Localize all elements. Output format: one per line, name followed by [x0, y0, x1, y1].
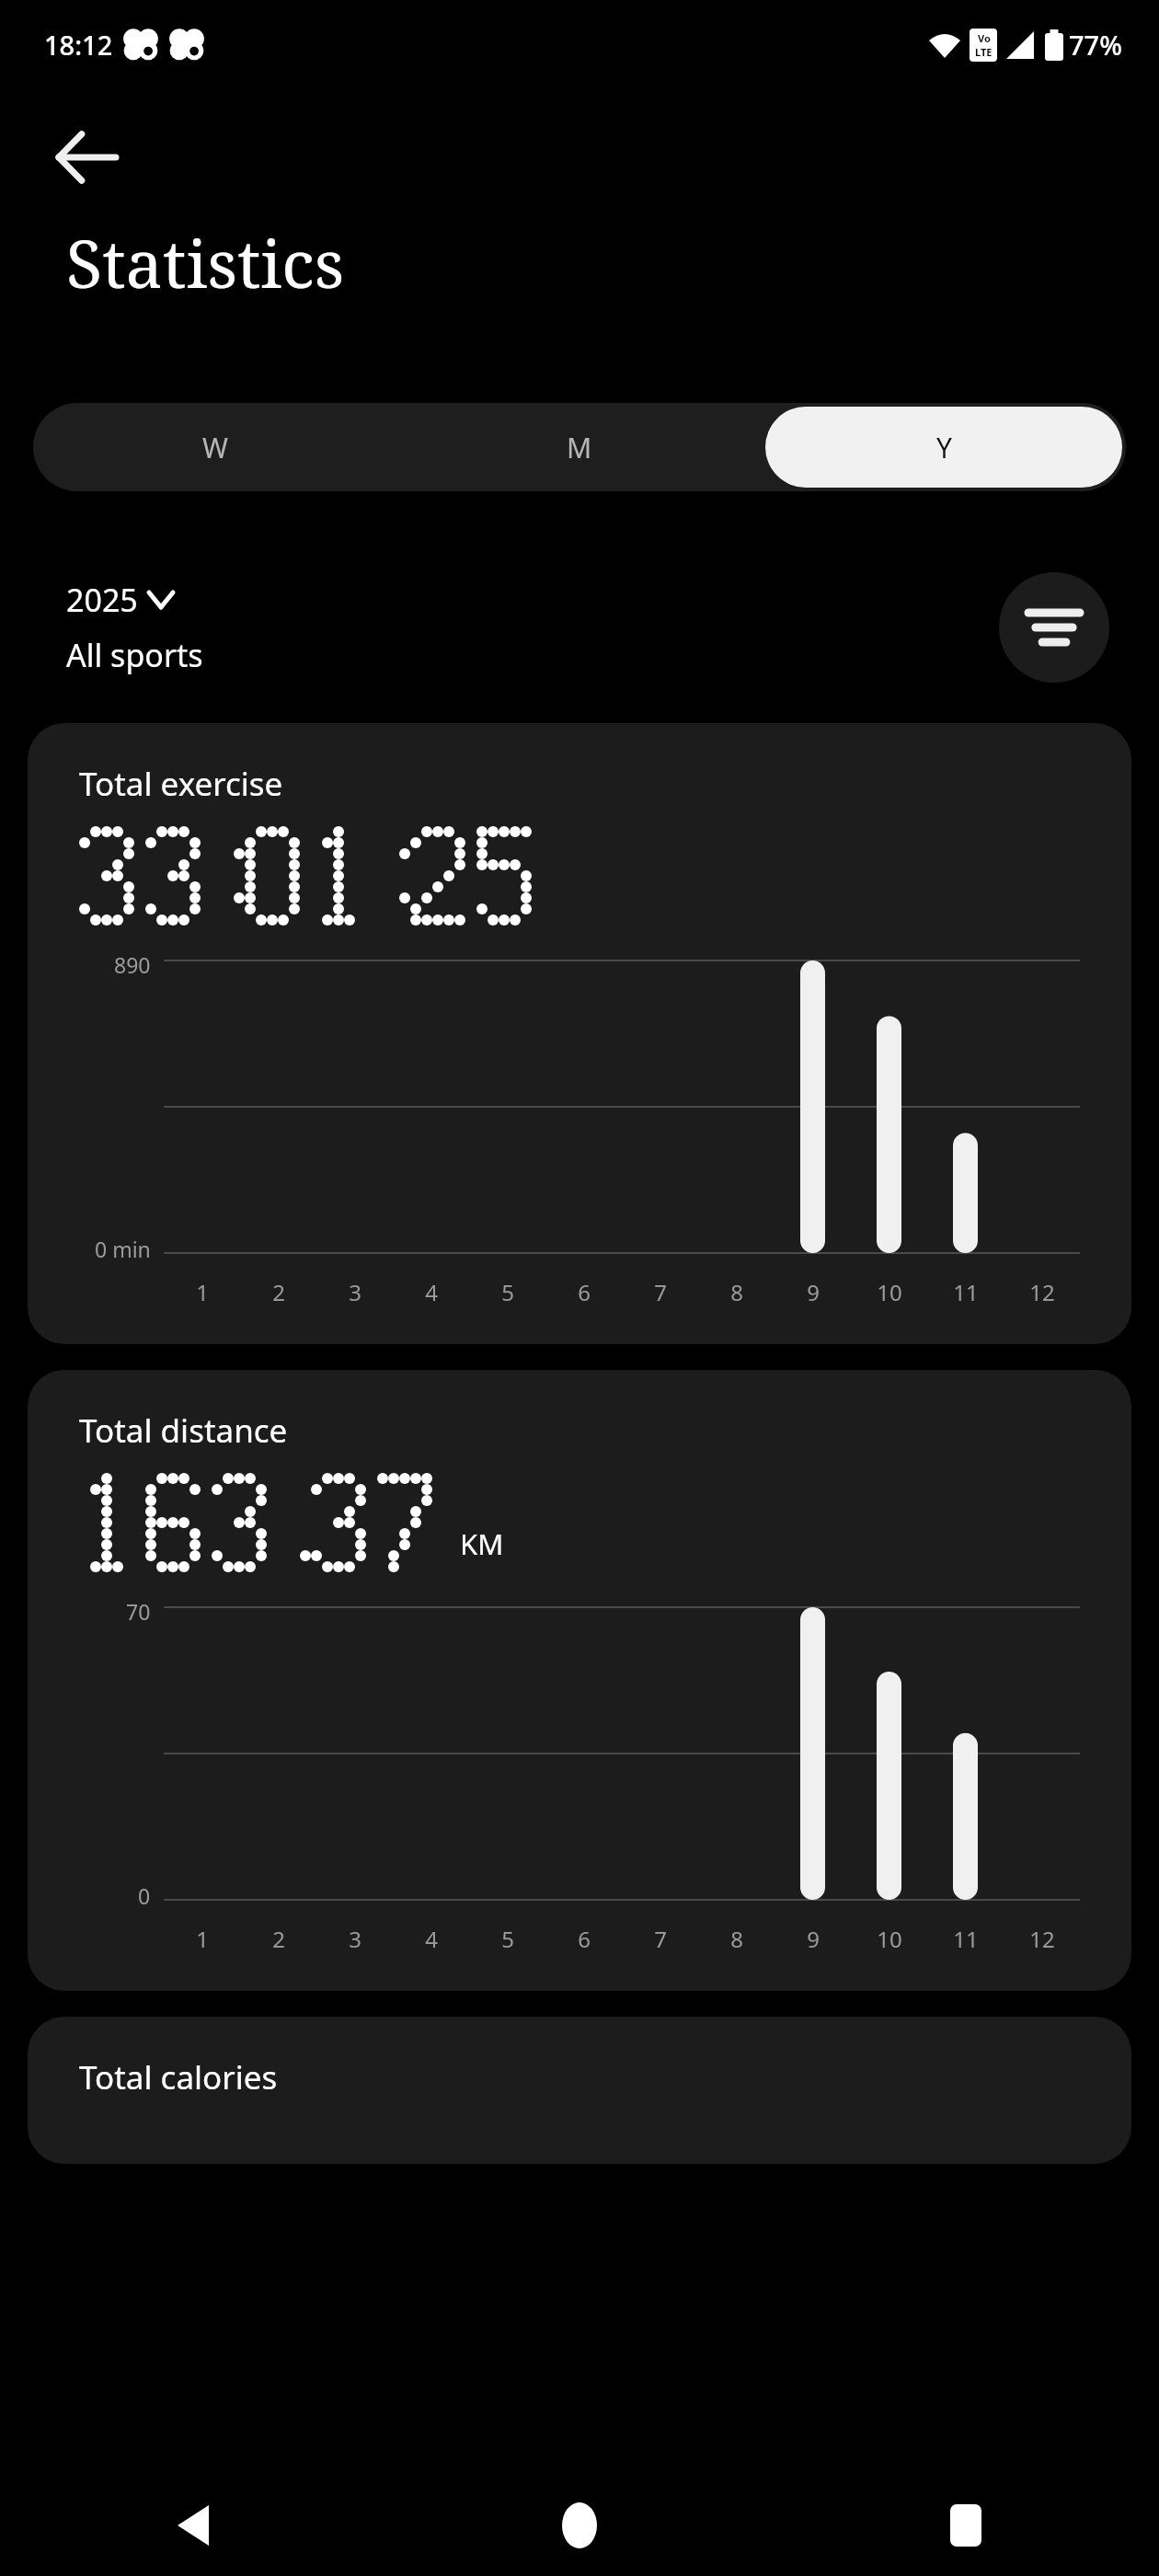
staticText: 7 [654, 1277, 667, 1307]
staticText: 2 [272, 1924, 285, 1954]
button[interactable]: Home [386, 2475, 773, 2576]
staticText: Y [936, 429, 952, 466]
staticText: 5 [501, 1277, 514, 1307]
button[interactable]: Filter [999, 572, 1109, 683]
staticText: Total exercise [79, 762, 283, 806]
button[interactable]: Y [765, 407, 1122, 488]
staticText: 10 [877, 1277, 902, 1307]
staticText: 12 [1029, 1277, 1055, 1307]
staticText: 3 [349, 1277, 361, 1307]
button[interactable]: W [37, 407, 394, 488]
staticText: 8 [730, 1924, 743, 1954]
staticText: LTE [975, 45, 993, 59]
staticText: 1 [196, 1924, 209, 1954]
staticText: 10 [877, 1924, 902, 1954]
button[interactable]: Back [37, 107, 138, 208]
staticText: 4 [425, 1277, 438, 1307]
button[interactable]: Total calories [28, 2017, 1131, 2164]
staticText: 0 [138, 1881, 151, 1910]
staticText: 9 [807, 1277, 820, 1307]
staticText: 11 [953, 1924, 979, 1954]
staticText: 4 [425, 1924, 438, 1954]
staticText: 1 [196, 1277, 209, 1307]
staticText: 3 [349, 1924, 361, 1954]
button[interactable]: Recent apps [773, 2475, 1159, 2576]
staticText: Statistics [66, 217, 345, 307]
staticText: 70 [126, 1597, 151, 1626]
button[interactable]: Total exercise [28, 723, 1131, 1344]
staticText: Total calories [79, 2055, 278, 2099]
staticText: 9 [807, 1924, 820, 1954]
staticText: W [202, 429, 228, 466]
staticText: 11 [953, 1277, 979, 1307]
button[interactable]: All sports [66, 634, 203, 676]
staticText: 0 min [95, 1235, 151, 1263]
button[interactable]: Total distance [28, 1370, 1131, 1991]
staticText: 7 [654, 1924, 667, 1954]
staticText: 8 [730, 1277, 743, 1307]
staticText: KM [460, 1524, 504, 1563]
staticText: 2 [272, 1277, 285, 1307]
staticText: 890 [114, 950, 151, 979]
staticText: 12 [1029, 1924, 1055, 1954]
staticText: M [567, 429, 592, 466]
staticText: 6 [578, 1924, 591, 1954]
staticText: Vo [978, 31, 991, 45]
button[interactable]: M [401, 407, 758, 488]
staticText: Total distance [79, 1409, 288, 1453]
staticText: 2025 [66, 579, 138, 621]
staticText: 5 [501, 1924, 514, 1954]
staticText: 18:12 [44, 27, 113, 63]
staticText: 6 [578, 1277, 591, 1307]
button[interactable]: 2025 [66, 579, 173, 621]
staticText: 77% [1069, 27, 1122, 63]
button[interactable]: Back [0, 2475, 386, 2576]
